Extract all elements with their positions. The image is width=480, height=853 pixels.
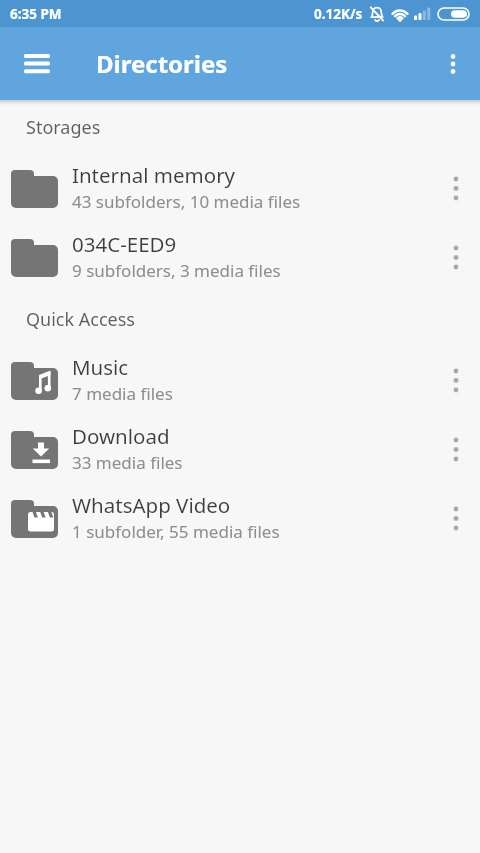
staticText: 43 subfolders, 10 media files [72, 190, 301, 213]
staticText: 7 media files [72, 382, 173, 405]
staticText: 6:35 PM [10, 5, 62, 23]
button[interactable]: WhatsApp Video [0, 484, 480, 553]
staticText: 0.12K/s [314, 5, 363, 23]
button[interactable] [426, 27, 480, 100]
staticText: 9 subfolders, 3 media files [72, 259, 281, 282]
staticText: Download [72, 422, 170, 450]
staticText: 034C-EED9 [72, 230, 177, 258]
staticText: Internal memory [72, 161, 236, 189]
staticText: 1 subfolder, 55 media files [72, 520, 280, 543]
staticText: 33 media files [72, 451, 183, 474]
button[interactable] [432, 484, 480, 553]
button[interactable]: Internal memory [0, 154, 480, 223]
staticText: Directories [96, 47, 228, 80]
button[interactable] [432, 154, 480, 223]
button[interactable] [432, 346, 480, 415]
staticText: Storages [26, 115, 101, 140]
button[interactable] [0, 27, 64, 100]
staticText: Quick Access [26, 307, 135, 332]
staticText: WhatsApp Video [72, 491, 231, 519]
button[interactable] [432, 415, 480, 484]
button[interactable]: Music [0, 346, 480, 415]
button[interactable] [432, 223, 480, 292]
staticText: Music [72, 353, 129, 381]
button[interactable]: Download [0, 415, 480, 484]
button[interactable]: 034C-EED9 [0, 223, 480, 292]
